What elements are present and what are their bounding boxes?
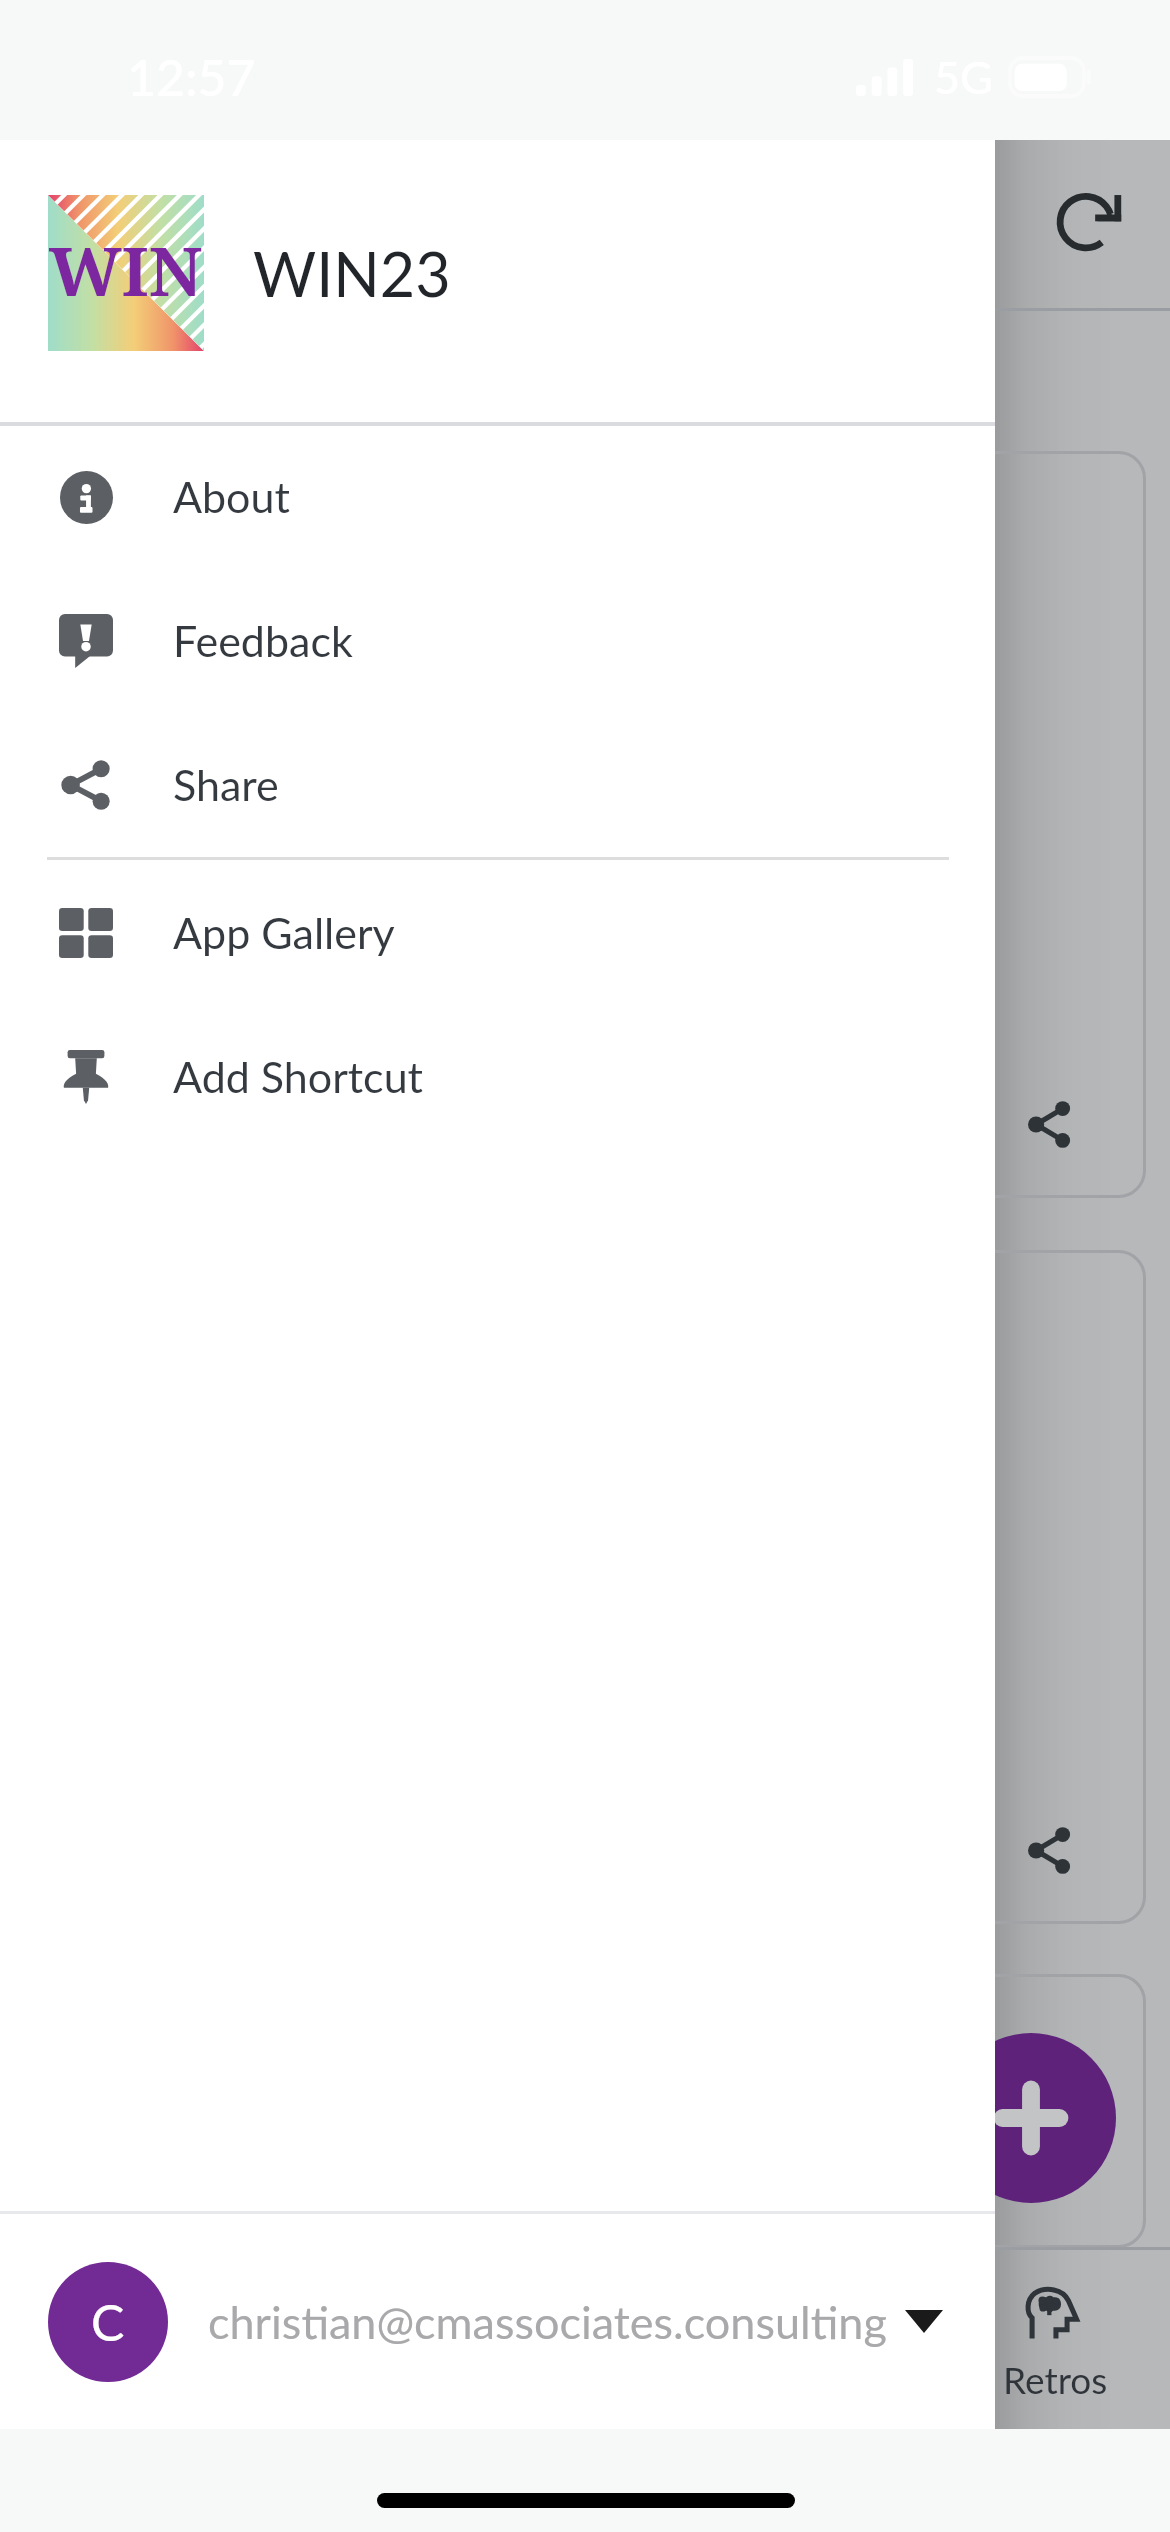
button[interactable]: Retros	[995, 2250, 1170, 2429]
staticText: Feedback	[173, 615, 353, 667]
staticText: Retros	[1003, 2357, 1108, 2401]
button[interactable]: Share	[0, 713, 995, 857]
button[interactable]: Feedback	[0, 569, 995, 713]
staticText: Add Shortcut	[173, 1051, 424, 1103]
button[interactable]: App Gallery	[0, 861, 995, 1005]
button[interactable]: Add	[946, 2033, 1116, 2203]
button[interactable]: C	[0, 2214, 995, 2429]
staticText: WIN23	[253, 237, 451, 310]
button[interactable]: Add Shortcut	[0, 1005, 995, 1149]
staticText: Share	[173, 759, 279, 811]
button[interactable]: Refresh	[1035, 168, 1145, 278]
staticText: C	[91, 2292, 125, 2352]
staticText: WIN	[49, 223, 203, 316]
button[interactable]: About	[0, 425, 995, 569]
button[interactable]: Share	[1002, 1803, 1096, 1897]
button[interactable]: Share	[1002, 1077, 1096, 1171]
staticText: 5G	[934, 50, 993, 104]
button[interactable]: WIN	[0, 140, 995, 422]
staticText: App Gallery	[173, 907, 395, 959]
staticText: About	[173, 471, 290, 523]
staticText: christian@cmassociates.consulting	[208, 2295, 887, 2349]
